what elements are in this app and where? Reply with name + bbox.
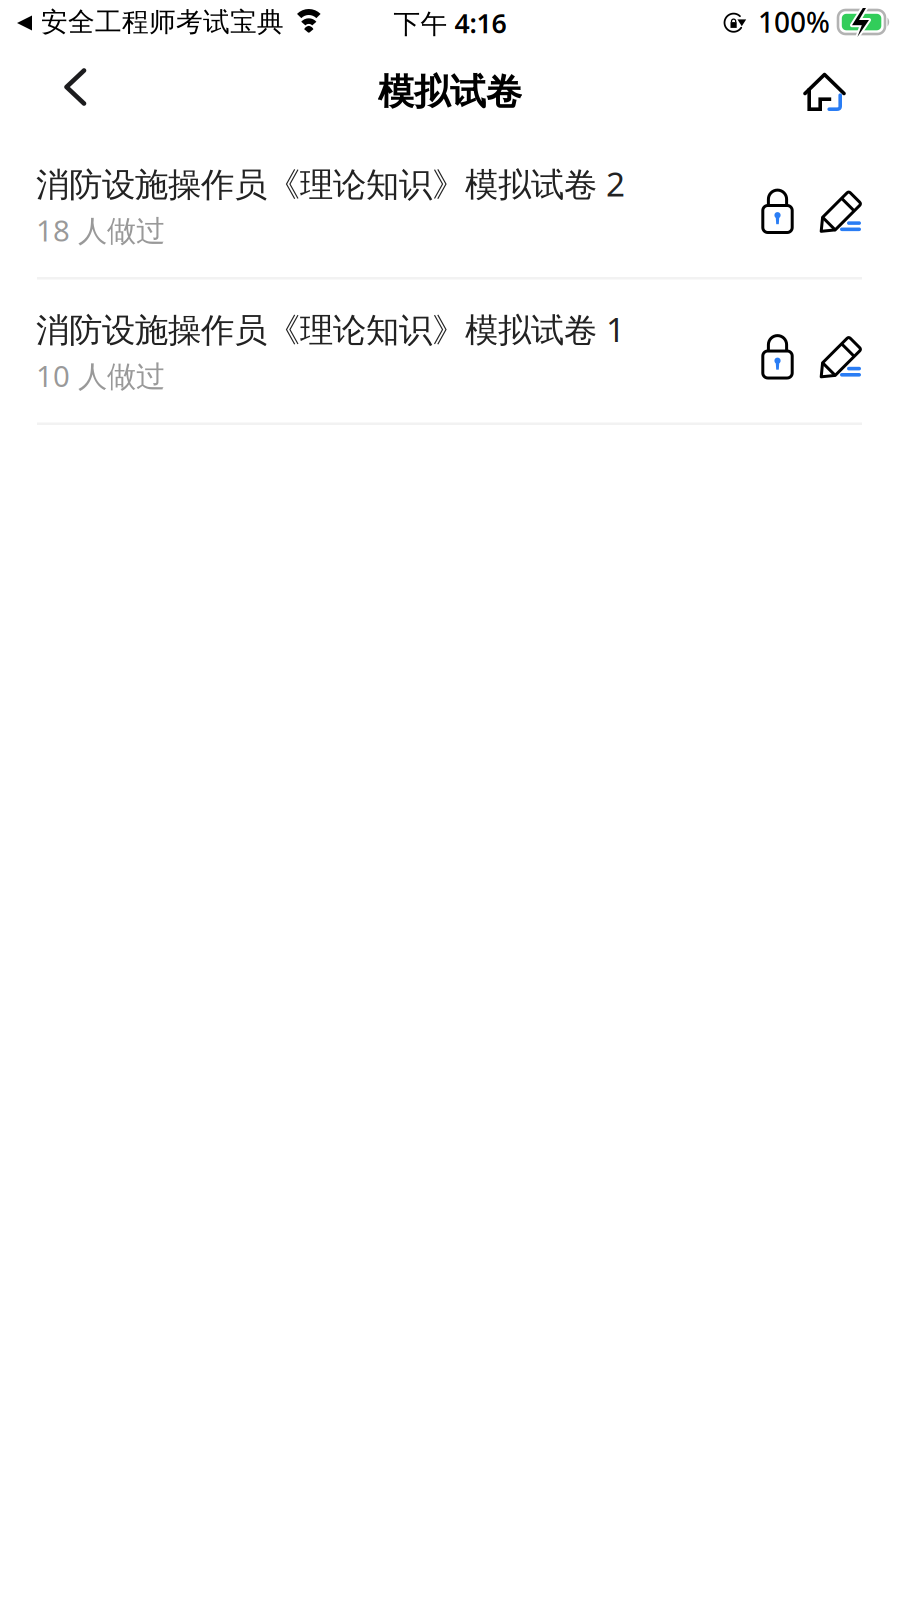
- staticText: 18 人做过: [36, 211, 165, 250]
- staticText: 模拟试卷: [378, 70, 522, 114]
- staticText: 消防设施操作员《理论知识》模拟试卷 2: [36, 161, 625, 206]
- button[interactable]: Start test: [820, 279, 862, 422]
- staticText: 安全工程师考试宝典: [41, 6, 284, 38]
- staticText: 下午 4:16: [393, 5, 506, 41]
- staticText: 100%: [758, 3, 830, 41]
- button[interactable]: Back: [40, 44, 110, 134]
- button[interactable]: Start test: [820, 134, 862, 277]
- staticText: 10 人做过: [36, 356, 165, 395]
- staticText: 消防设施操作员《理论知识》模拟试卷 1: [36, 307, 625, 351]
- button[interactable]: 消防设施操作员《理论知识》模拟试卷 1: [36, 279, 625, 422]
- button[interactable]: Locked paper: [761, 279, 794, 422]
- button[interactable]: Locked paper: [761, 134, 794, 277]
- button[interactable]: Home: [787, 44, 863, 134]
- button[interactable]: 消防设施操作员《理论知识》模拟试卷 2: [36, 134, 625, 277]
